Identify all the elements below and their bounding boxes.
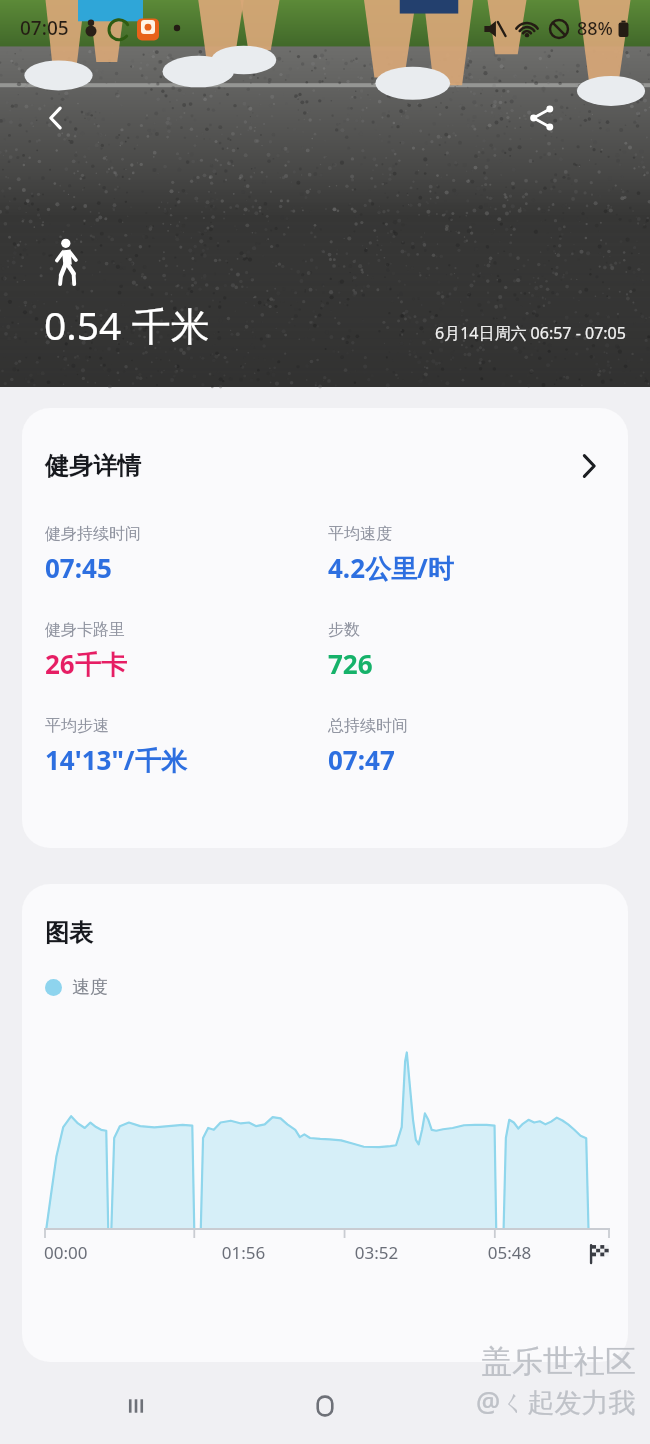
staticText: 07:45 <box>45 550 112 585</box>
staticText: 05:48 <box>443 1241 576 1264</box>
staticText: 图表 <box>45 918 93 948</box>
staticText: 07:05 <box>20 15 69 41</box>
staticText: 03:52 <box>310 1241 443 1264</box>
staticText: 健身详情 <box>45 451 141 481</box>
staticText: 0.54 千米 <box>44 298 210 351</box>
staticText: 步数 <box>328 620 360 640</box>
staticText: 总持续时间 <box>328 716 408 736</box>
button[interactable]: Back <box>30 92 82 144</box>
staticText: 平均步速 <box>45 716 109 736</box>
staticText: 健身持续时间 <box>45 524 141 544</box>
button[interactable]: 健身详情 <box>22 408 628 524</box>
button[interactable]: Recent apps <box>108 1378 164 1434</box>
staticText: 88% <box>577 16 613 41</box>
staticText: @ㄑ起发力我 <box>476 1383 636 1420</box>
button[interactable]: Home <box>297 1378 353 1434</box>
staticText: 01:56 <box>177 1241 310 1264</box>
staticText: 14'13"/千米 <box>45 742 187 778</box>
staticText: 4.2公里/时 <box>328 550 454 586</box>
staticText: 平均速度 <box>328 524 392 544</box>
staticText: 速度 <box>72 976 108 999</box>
staticText: 726 <box>328 646 373 681</box>
staticText: 盖乐世社区 <box>481 1342 636 1381</box>
button[interactable]: Share <box>516 92 568 144</box>
staticText: 00:00 <box>44 1241 177 1264</box>
staticText: 07:47 <box>328 742 395 777</box>
staticText: 26千卡 <box>45 646 127 682</box>
staticText: 健身卡路里 <box>45 620 125 640</box>
staticText: 6月14日周六 06:57 - 07:05 <box>435 322 626 344</box>
